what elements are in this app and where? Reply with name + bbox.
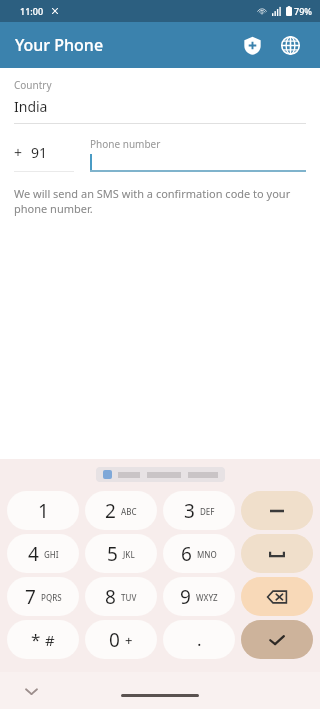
staticText: JKL bbox=[123, 549, 135, 560]
staticText: India bbox=[14, 97, 48, 116]
staticText: We will send an SMS with a confirmation … bbox=[14, 186, 306, 216]
staticText: 11:00 bbox=[20, 5, 44, 17]
button[interactable]: 4 bbox=[7, 534, 79, 573]
staticText: 79% bbox=[294, 5, 312, 17]
staticText: WXYZ bbox=[196, 592, 218, 603]
button[interactable]: Security bbox=[234, 27, 270, 63]
button[interactable]: * bbox=[7, 620, 79, 659]
staticText: + bbox=[14, 143, 23, 162]
staticText: # bbox=[45, 630, 55, 650]
button[interactable]: Country bbox=[0, 78, 320, 123]
staticText: . bbox=[197, 628, 202, 651]
staticText: 3 bbox=[184, 498, 195, 524]
button[interactable]: Space bbox=[241, 534, 313, 573]
staticText: 8 bbox=[105, 584, 116, 610]
staticText: + bbox=[125, 631, 133, 649]
staticText: 4 bbox=[28, 541, 39, 567]
button[interactable]: + bbox=[14, 143, 74, 172]
button[interactable]: 1 bbox=[7, 491, 79, 530]
button[interactable]: 9 bbox=[163, 577, 235, 616]
staticText: 6 bbox=[181, 541, 192, 567]
staticText: MNO bbox=[197, 549, 217, 560]
button[interactable]: 6 bbox=[163, 534, 235, 573]
button[interactable]: 0 bbox=[85, 620, 157, 659]
button[interactable]: Phone number bbox=[90, 137, 306, 172]
button[interactable]: Language bbox=[272, 27, 308, 63]
staticText: GHI bbox=[44, 549, 59, 560]
staticText: PQRS bbox=[41, 592, 62, 603]
button[interactable]: . bbox=[163, 620, 235, 659]
staticText: ABC bbox=[121, 506, 137, 517]
staticText: * bbox=[31, 628, 41, 651]
staticText: 9 bbox=[180, 584, 191, 610]
button[interactable]: 3 bbox=[163, 491, 235, 530]
staticText: DEF bbox=[200, 506, 215, 517]
button[interactable]: Enter bbox=[241, 620, 313, 659]
staticText: 5 bbox=[107, 541, 118, 567]
staticText: 2 bbox=[105, 498, 116, 524]
button[interactable] bbox=[96, 467, 225, 482]
button[interactable]: 5 bbox=[85, 534, 157, 573]
button[interactable]: Dash bbox=[241, 491, 313, 530]
button[interactable]: 2 bbox=[85, 491, 157, 530]
staticText: TUV bbox=[121, 592, 137, 603]
button[interactable]: Hide keyboard bbox=[18, 678, 44, 704]
staticText: 91 bbox=[31, 143, 48, 162]
button[interactable]: 7 bbox=[7, 577, 79, 616]
staticText: Your Phone bbox=[15, 34, 104, 56]
button[interactable]: 8 bbox=[85, 577, 157, 616]
staticText: Country bbox=[14, 78, 52, 92]
button[interactable]: Backspace bbox=[241, 577, 313, 616]
staticText: Phone number bbox=[90, 137, 161, 151]
staticText: 7 bbox=[25, 584, 36, 610]
staticText: 1 bbox=[38, 498, 49, 524]
staticText: 0 bbox=[109, 627, 120, 653]
